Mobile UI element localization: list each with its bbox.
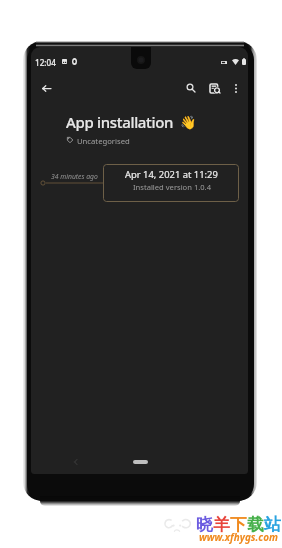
- staticText: 下: [230, 514, 247, 535]
- staticText: 站: [264, 514, 281, 535]
- staticText: Uncategorised: [77, 136, 130, 146]
- button[interactable]: More options: [226, 78, 246, 98]
- staticText: App installation: [66, 112, 174, 132]
- button[interactable]: Find in page: [205, 78, 225, 98]
- staticText: 👋: [180, 115, 197, 130]
- staticText: 载: [247, 514, 264, 535]
- button[interactable]: Home: [133, 460, 148, 464]
- staticText: 34 minutes ago: [51, 172, 98, 181]
- button[interactable]: Apr 14, 2021 at 11:29: [103, 164, 239, 202]
- staticText: Installed version 1.0.4: [133, 182, 211, 192]
- button[interactable]: Search: [181, 78, 201, 98]
- staticText: 晓: [196, 514, 213, 535]
- staticText: Apr 14, 2021 at 11:29: [125, 168, 218, 181]
- staticText: 羊: [213, 514, 230, 535]
- staticText: 12:04: [35, 57, 56, 68]
- button[interactable]: Back: [36, 78, 56, 98]
- staticText: www.xfhygs.com: [199, 530, 278, 543]
